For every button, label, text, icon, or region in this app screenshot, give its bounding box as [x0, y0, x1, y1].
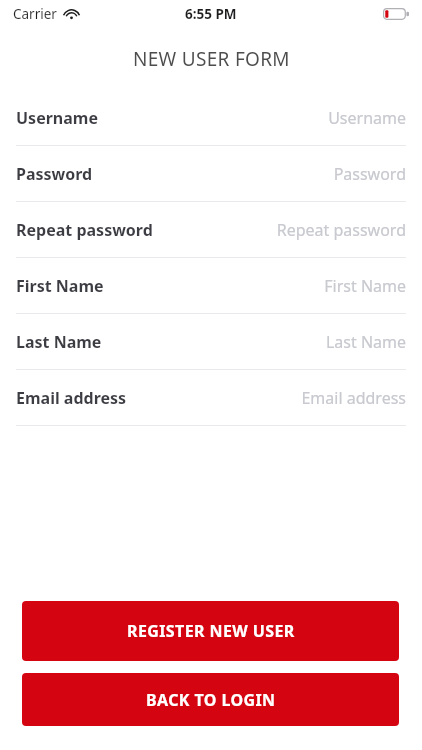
staticText: First Name [16, 275, 104, 297]
staticText: First Name [112, 275, 406, 297]
staticText: Carrier [13, 5, 57, 23]
staticText: Last Name [16, 331, 102, 353]
button[interactable]: Username [0, 90, 422, 146]
button[interactable]: First Name [0, 258, 422, 314]
staticText: Repeat password [161, 219, 406, 241]
staticText: Username [106, 107, 406, 129]
staticText: BACK TO LOGIN [146, 689, 276, 711]
staticText: Last Name [110, 331, 406, 353]
staticText: NEW USER FORM [133, 46, 290, 72]
staticText: Email address [16, 387, 127, 409]
button[interactable]: Last Name [0, 314, 422, 370]
button[interactable]: REGISTER NEW USER [22, 601, 399, 661]
staticText: Username [16, 107, 98, 129]
staticText: REGISTER NEW USER [127, 620, 295, 642]
button[interactable]: Repeat password [0, 202, 422, 258]
staticText: Password [16, 163, 93, 185]
staticText: 6:55 PM [185, 5, 237, 23]
staticText: Repeat password [16, 219, 153, 241]
button[interactable]: Password [0, 146, 422, 202]
button[interactable]: BACK TO LOGIN [22, 673, 399, 726]
staticText: Email address [135, 387, 406, 409]
button[interactable]: Email address [0, 370, 422, 426]
staticText: Password [101, 163, 406, 185]
